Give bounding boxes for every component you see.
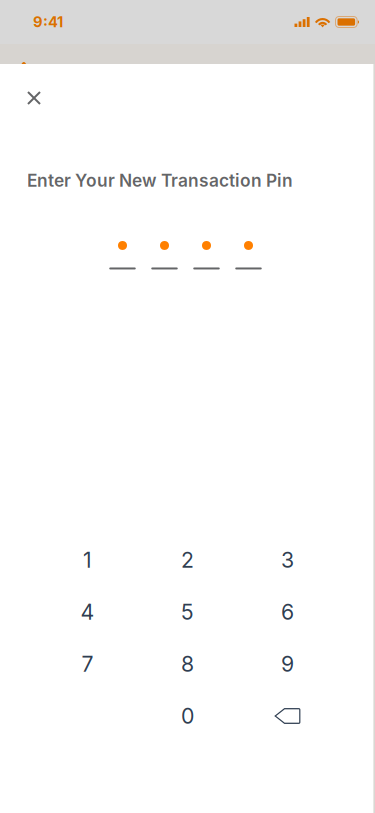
button[interactable]: 8 <box>137 638 237 690</box>
button[interactable]: 4 <box>37 586 137 638</box>
staticText: Enter Your New Transaction Pin <box>27 170 293 191</box>
button[interactable]: 0 <box>137 690 237 742</box>
button[interactable]: 6 <box>237 586 337 638</box>
staticText: 9 <box>281 651 294 677</box>
staticText: 9:41 <box>33 13 63 31</box>
staticText: 2 <box>181 547 194 573</box>
staticText: 8 <box>181 651 194 677</box>
staticText: 6 <box>281 599 294 625</box>
button[interactable]: 7 <box>37 638 137 690</box>
staticText: 0 <box>181 703 194 729</box>
button[interactable]: 2 <box>137 534 237 586</box>
button[interactable]: Close <box>13 77 55 119</box>
staticText: 3 <box>281 547 294 573</box>
staticText: 4 <box>80 599 94 625</box>
staticText: 1 <box>83 547 92 573</box>
button[interactable]: Delete <box>237 690 337 742</box>
staticText: 5 <box>181 599 194 625</box>
button[interactable]: 5 <box>137 586 237 638</box>
button[interactable]: 3 <box>237 534 337 586</box>
button[interactable]: 1 <box>37 534 137 586</box>
staticText: 7 <box>81 651 93 677</box>
button[interactable]: 9 <box>237 638 337 690</box>
